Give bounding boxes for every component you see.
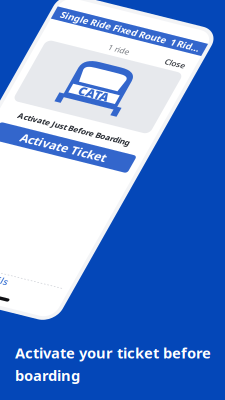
button[interactable]: Close xyxy=(189,29,214,42)
staticText: Activate Just Before Boarding xyxy=(86,121,201,132)
staticText: Single Ride Fixed Route 1 Ride Adult xyxy=(73,8,221,21)
staticText: Close xyxy=(191,30,212,41)
staticText: 1 ride xyxy=(132,30,154,41)
staticText: Activate Ticket xyxy=(99,140,187,156)
staticText: Activate your ticket before xyxy=(15,343,211,362)
button[interactable]: Activate Ticket xyxy=(73,138,214,158)
staticText: CATA xyxy=(128,78,159,94)
staticText: boarding xyxy=(15,365,80,385)
